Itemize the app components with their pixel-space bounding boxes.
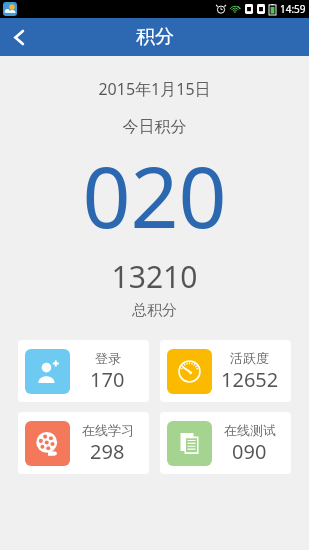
staticText: 活跃度 <box>230 350 269 366</box>
staticText: 170 <box>90 366 125 393</box>
staticText: 2015年1月15日 <box>0 78 309 100</box>
staticText: 12652 <box>221 366 279 393</box>
staticText: 090 <box>232 438 267 465</box>
button[interactable]: 活跃度 <box>160 340 291 402</box>
staticText: 298 <box>90 438 125 465</box>
staticText: 在线测试 <box>224 422 276 438</box>
staticText: 积分 <box>136 25 174 49</box>
button[interactable]: 在线测试 <box>160 412 291 474</box>
staticText: 13210 <box>0 256 309 297</box>
button[interactable]: 在线学习 <box>18 412 149 474</box>
button[interactable]: Back <box>0 18 38 56</box>
staticText: 总积分 <box>0 301 309 320</box>
staticText: 今日积分 <box>0 117 309 137</box>
staticText: 14:59 <box>280 2 306 16</box>
staticText: 020 <box>0 138 309 252</box>
staticText: 在线学习 <box>82 422 134 438</box>
staticText: 登录 <box>95 350 121 366</box>
button[interactable]: 登录 <box>18 340 149 402</box>
